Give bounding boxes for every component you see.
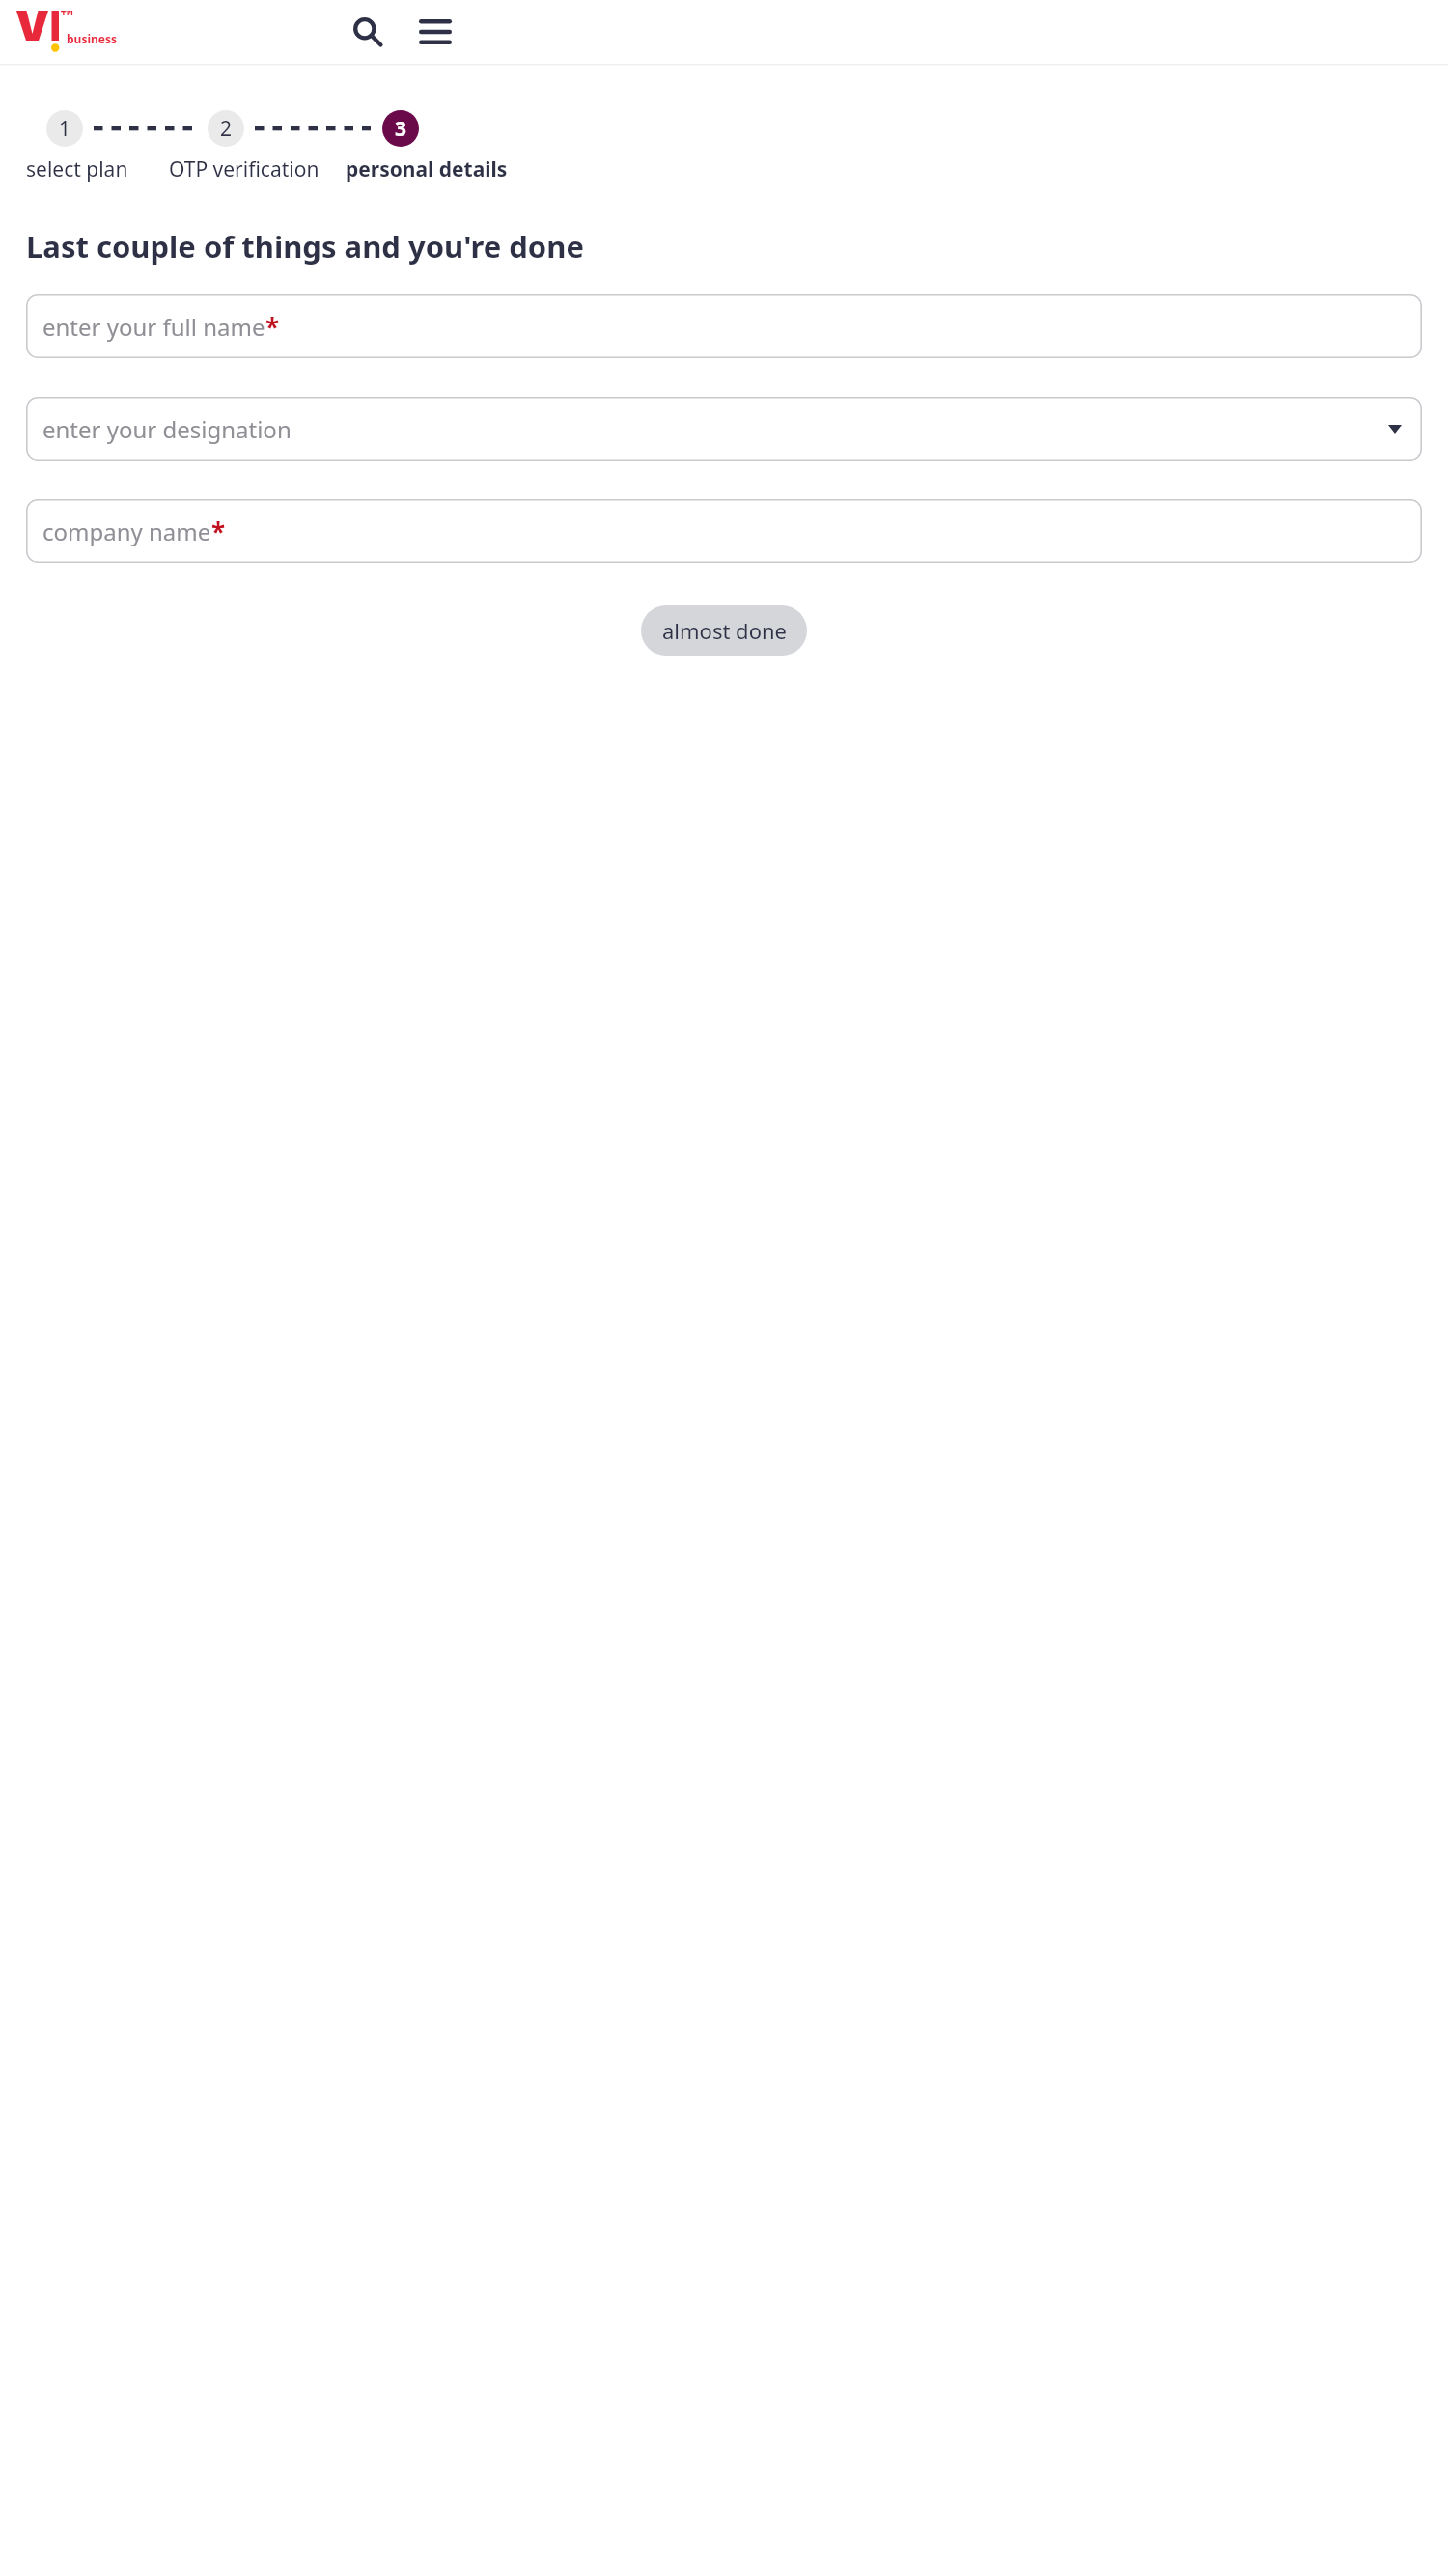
staticText: personal details <box>346 155 508 183</box>
button[interactable]: 1 <box>46 110 83 147</box>
staticText: * <box>211 515 226 548</box>
staticText: almost done <box>662 616 787 645</box>
button[interactable]: enter your full name <box>26 294 1422 358</box>
staticText: 2 <box>220 115 233 143</box>
button[interactable]: 2 <box>208 110 244 147</box>
button[interactable]: company name <box>26 499 1422 563</box>
button[interactable]: Search <box>343 7 393 57</box>
staticText: enter your full name <box>42 311 265 343</box>
staticText: company name <box>42 516 211 547</box>
staticText: select plan <box>26 155 128 183</box>
button[interactable]: Menu <box>410 7 460 57</box>
button[interactable]: enter your designation <box>26 397 1422 461</box>
staticText: Last couple of things and you're done <box>26 226 584 266</box>
staticText: 1 <box>59 115 71 143</box>
staticText: business <box>67 31 118 46</box>
button[interactable]: Vi business home <box>15 8 131 56</box>
other: Open dropdown <box>1385 419 1405 438</box>
button[interactable]: 3 <box>382 110 419 147</box>
staticText: enter your designation <box>42 413 292 445</box>
staticText: * <box>265 310 280 344</box>
staticText: OTP verification <box>169 155 320 183</box>
staticText: 3 <box>395 115 407 143</box>
button[interactable]: almost done <box>641 605 807 656</box>
